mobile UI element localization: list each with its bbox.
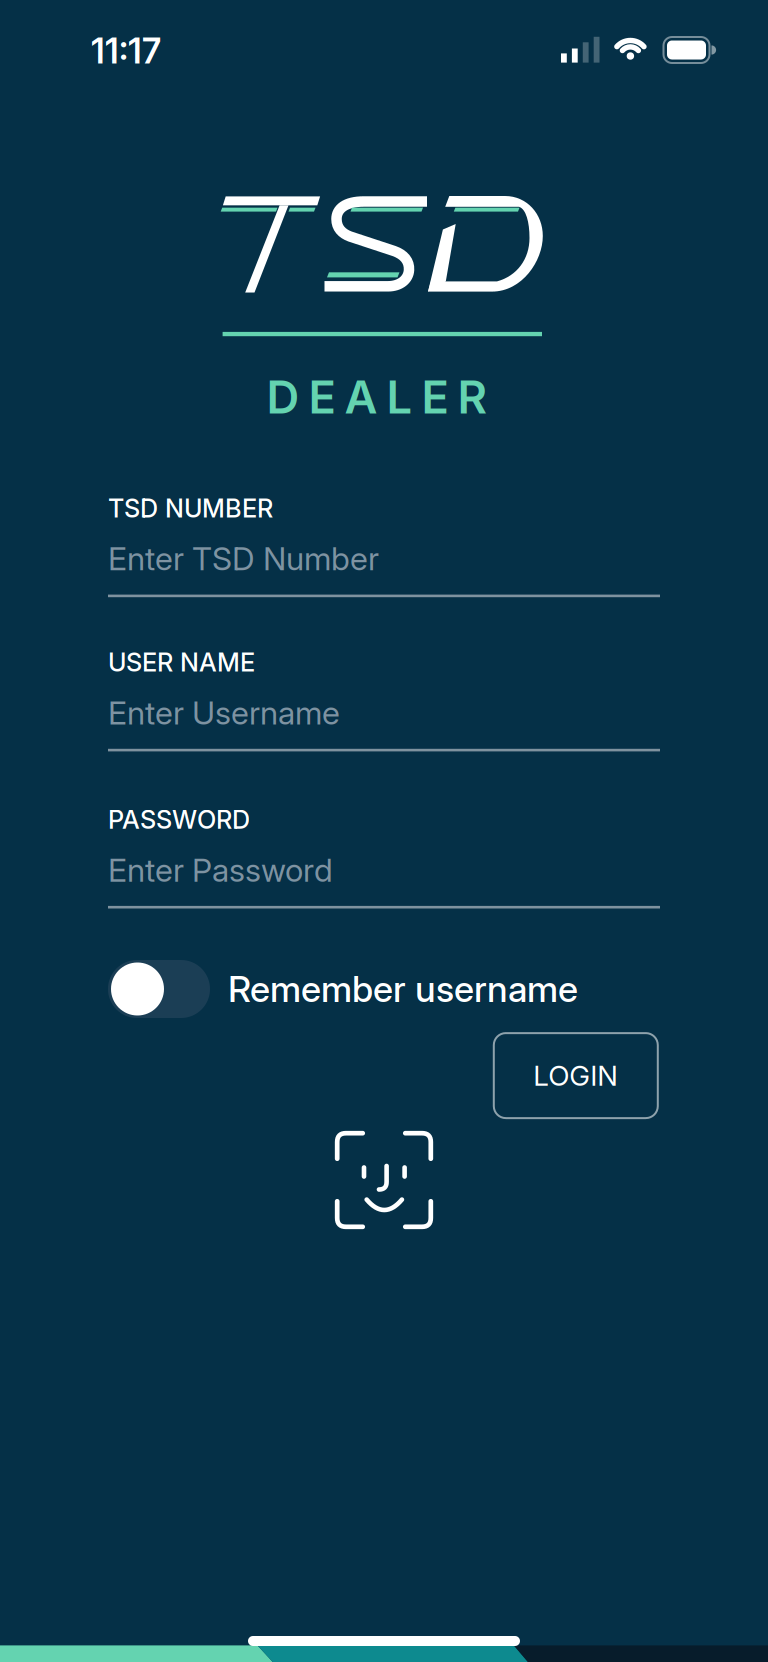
- button[interactable]: Enter Username: [108, 677, 660, 751]
- button[interactable]: Enter Password: [108, 834, 660, 908]
- staticText: DEALER: [266, 370, 487, 424]
- staticText: TSD NUMBER: [108, 493, 273, 523]
- staticText: Remember username: [228, 968, 578, 1010]
- staticText: USER NAME: [108, 647, 255, 677]
- button[interactable]: Log in with Face ID: [334, 1130, 434, 1230]
- button[interactable]: Remember username: [108, 960, 668, 1018]
- staticText: PASSWORD: [108, 805, 250, 834]
- staticText: Enter Username: [108, 694, 340, 732]
- staticText: Enter Password: [108, 851, 333, 889]
- staticText: LOGIN: [533, 1059, 618, 1092]
- staticText: Enter TSD Number: [108, 540, 379, 578]
- button[interactable]: Enter TSD Number: [108, 523, 660, 597]
- button[interactable]: LOGIN: [494, 1033, 658, 1118]
- staticText: 11:17: [91, 31, 161, 71]
